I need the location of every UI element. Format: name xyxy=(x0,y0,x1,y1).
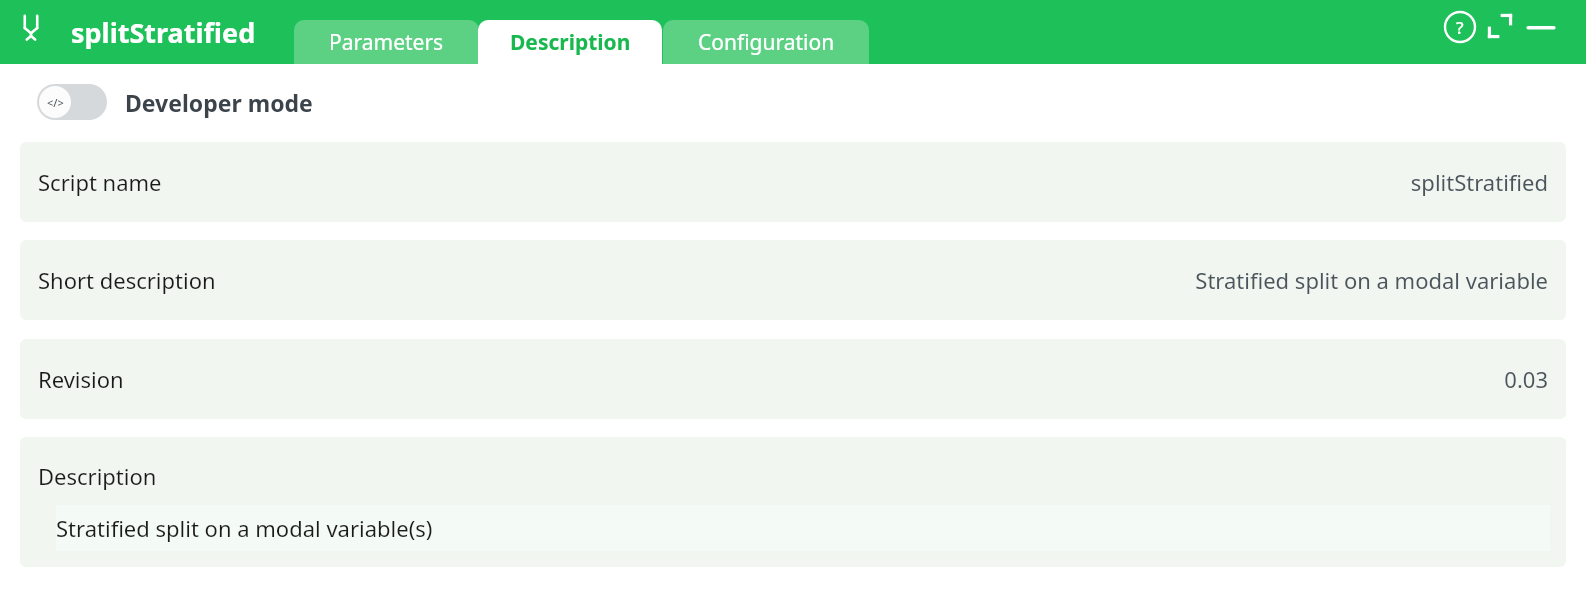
staticText: Description xyxy=(510,28,631,57)
button[interactable]: Revision xyxy=(20,339,1566,419)
staticText: Stratified split on a modal variable(s) xyxy=(56,513,433,543)
staticText: Script name xyxy=(38,167,162,197)
other: Script icon xyxy=(18,14,44,46)
button[interactable]: Description xyxy=(20,437,1566,567)
staticText: </> xyxy=(47,95,64,110)
button[interactable]: Script name xyxy=(20,142,1566,222)
staticText: Short description xyxy=(38,265,216,295)
button[interactable]: Minimize xyxy=(1524,10,1558,44)
button[interactable]: Help xyxy=(1443,10,1477,44)
button[interactable]: Description xyxy=(478,20,662,64)
staticText: splitStratified xyxy=(1410,167,1548,197)
staticText: Description xyxy=(38,461,157,491)
staticText: Stratified split on a modal variable xyxy=(1195,265,1548,295)
staticText: Configuration xyxy=(698,28,835,57)
staticText: Developer mode xyxy=(125,87,313,118)
staticText: ? xyxy=(1456,16,1464,39)
staticText: splitStratified xyxy=(71,14,256,51)
button[interactable]: Parameters xyxy=(294,20,479,64)
staticText: 0.03 xyxy=(1504,364,1548,394)
button[interactable]: Developer mode toggle xyxy=(37,84,107,120)
button[interactable]: Expand xyxy=(1484,10,1516,42)
button[interactable]: Configuration xyxy=(663,20,869,64)
button[interactable]: Short description xyxy=(20,240,1566,320)
staticText: Parameters xyxy=(329,28,444,57)
staticText: Revision xyxy=(38,364,124,394)
